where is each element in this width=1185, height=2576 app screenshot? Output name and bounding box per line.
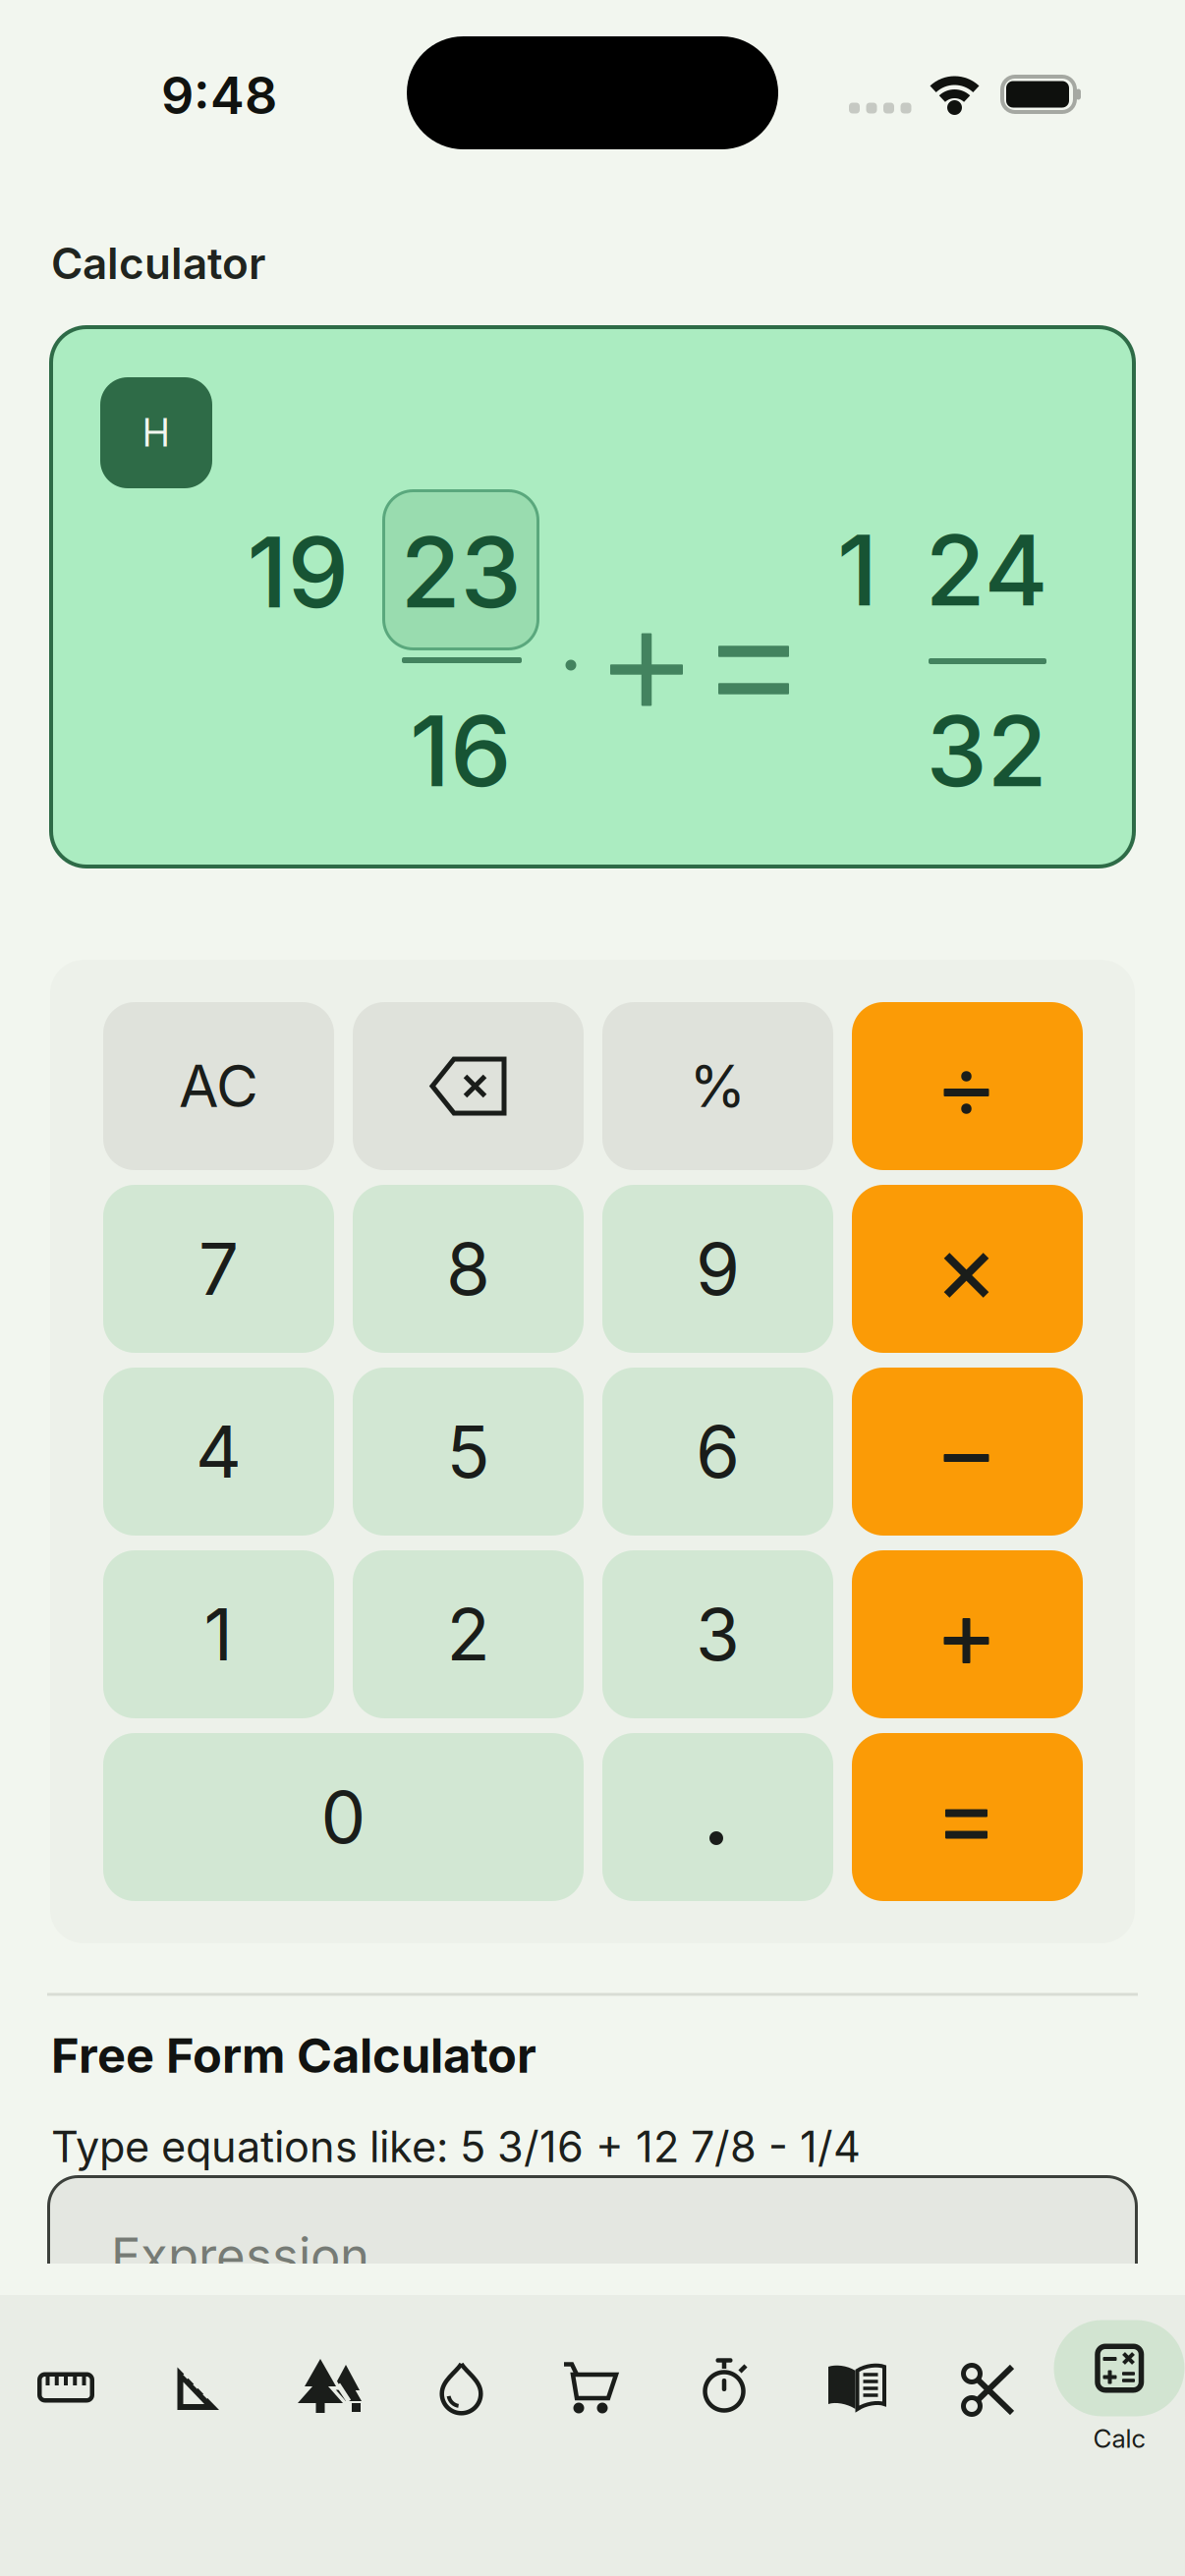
staticText: 9:48: [161, 64, 277, 126]
staticText: %: [689, 1051, 746, 1121]
button[interactable]: 1: [103, 1550, 334, 1718]
staticText: AC: [179, 1051, 258, 1121]
button[interactable]: Trees: [263, 2295, 395, 2531]
button[interactable]: Shopping: [527, 2295, 658, 2531]
button[interactable]: 3: [602, 1550, 833, 1718]
button[interactable]: 7: [103, 1185, 334, 1353]
button[interactable]: Reference: [790, 2295, 922, 2531]
button[interactable]: Ruler: [0, 2295, 132, 2531]
staticText: Calculator: [51, 237, 265, 289]
button[interactable]: Calc: [1053, 2295, 1185, 2531]
staticText: Calc: [1093, 2423, 1145, 2454]
staticText: 1: [204, 1591, 233, 1677]
staticText: 1: [837, 511, 877, 629]
staticText: 2: [447, 1591, 490, 1677]
staticText: 23: [400, 513, 521, 631]
staticText: 8: [446, 1226, 490, 1312]
button[interactable]: Set Square: [132, 2295, 263, 2531]
staticText: Expression: [111, 2226, 369, 2286]
button[interactable]: Subtract: [852, 1368, 1083, 1536]
staticText: 4: [196, 1408, 242, 1495]
button[interactable]: 5: [353, 1368, 584, 1536]
staticText: 24: [925, 511, 1048, 629]
button[interactable]: All Clear: [103, 1002, 334, 1170]
staticText: H: [142, 410, 170, 456]
button[interactable]: Divide: [852, 1002, 1083, 1170]
staticText: 19: [247, 513, 349, 631]
button[interactable]: 6: [602, 1368, 833, 1536]
staticText: 16: [410, 692, 512, 810]
button[interactable]: 9: [602, 1185, 833, 1353]
button[interactable]: Timer: [658, 2295, 790, 2531]
button[interactable]: Expression: [47, 2175, 1138, 2313]
button[interactable]: 0: [103, 1733, 584, 1901]
button[interactable]: Water: [395, 2295, 527, 2531]
button[interactable]: 8: [353, 1185, 584, 1353]
button[interactable]: Decimal: [602, 1733, 833, 1901]
staticText: 6: [696, 1408, 740, 1495]
button[interactable]: Multiply: [852, 1185, 1083, 1353]
staticText: Type equations like: 5 3/16 + 12 7/8 - 1…: [51, 2121, 861, 2172]
button[interactable]: 2: [353, 1550, 584, 1718]
button[interactable]: History: [100, 377, 212, 488]
button[interactable]: 4: [103, 1368, 334, 1536]
staticText: 5: [447, 1408, 490, 1495]
button[interactable]: Percent: [602, 1002, 833, 1170]
button[interactable]: Add: [852, 1550, 1083, 1718]
staticText: 3: [696, 1591, 740, 1677]
staticText: 9: [696, 1226, 740, 1312]
button[interactable]: Equals: [852, 1733, 1083, 1901]
button[interactable]: Cut List: [922, 2295, 1053, 2531]
button[interactable]: Delete: [353, 1002, 584, 1170]
staticText: 0: [321, 1774, 366, 1860]
staticText: 7: [198, 1226, 239, 1312]
staticText: Free Form Calculator: [51, 2026, 536, 2084]
staticText: 32: [926, 692, 1047, 810]
